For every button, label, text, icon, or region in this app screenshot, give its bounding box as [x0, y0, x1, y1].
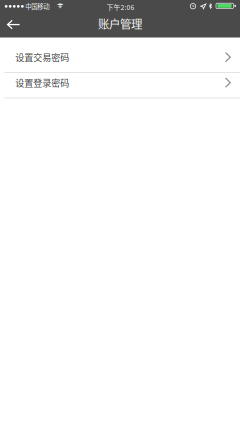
button[interactable]: 设置交易密码 [0, 47, 240, 73]
staticText: 设置登录密码 [15, 76, 69, 89]
staticText: 设置交易密码 [15, 51, 69, 64]
button[interactable]: 设置登录密码 [0, 73, 240, 98]
staticText: 下午2:06 [107, 2, 135, 12]
staticText: 账户管理 [98, 15, 142, 32]
staticText: 中国移动 [25, 2, 49, 11]
button[interactable]: Back [0, 13, 32, 36]
